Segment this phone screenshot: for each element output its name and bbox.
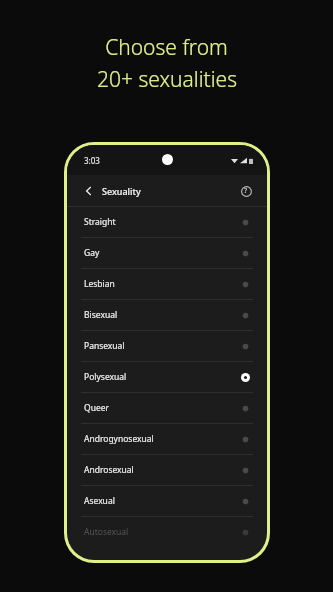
button[interactable]: Androgynosexual [67, 424, 267, 454]
button[interactable]: Back [81, 183, 97, 199]
staticText: Androgynosexual [84, 433, 241, 445]
button[interactable]: Back [67, 175, 267, 206]
button[interactable]: Help [238, 183, 254, 199]
button[interactable]: Straight [67, 207, 267, 237]
staticText: Pansexual [84, 340, 241, 352]
button[interactable]: Androsexual [67, 455, 267, 485]
staticText: Androsexual [84, 464, 241, 476]
button[interactable]: Lesbian [67, 269, 267, 299]
button[interactable]: Bisexual [67, 300, 267, 330]
staticText: 3:03 [84, 155, 100, 166]
staticText: 20+ sexualities [97, 65, 237, 94]
staticText: Autosexual [84, 526, 241, 538]
staticText: Bisexual [84, 309, 241, 321]
staticText: Queer [84, 402, 241, 414]
staticText: Polysexual [84, 371, 241, 383]
staticText: ? [244, 186, 248, 196]
staticText: Choose from [105, 33, 228, 62]
staticText: Gay [84, 247, 241, 259]
button[interactable]: Queer [67, 393, 267, 423]
staticText: Sexuality [102, 185, 141, 197]
button[interactable]: Autosexual [67, 517, 267, 547]
staticText: Asexual [84, 495, 241, 507]
button[interactable]: Pansexual [67, 331, 267, 361]
button[interactable]: Asexual [67, 486, 267, 516]
staticText: Lesbian [84, 278, 241, 290]
staticText: Straight [84, 216, 241, 228]
button[interactable]: Polysexual [67, 362, 267, 392]
button[interactable]: Gay [67, 238, 267, 268]
